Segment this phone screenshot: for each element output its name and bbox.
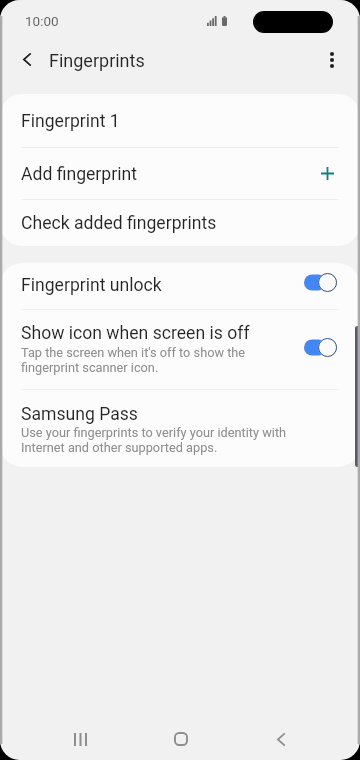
button[interactable]: Navigate up	[3, 40, 43, 80]
button[interactable]: Recent apps	[48, 716, 112, 760]
button[interactable]: Show icon when screen is off	[0, 309, 360, 389]
button[interactable]: Back	[249, 716, 313, 760]
button[interactable]: Samsung Pass	[0, 389, 360, 467]
button[interactable]: Add fingerprint	[0, 147, 360, 199]
button[interactable]: Fingerprint 1	[0, 94, 360, 147]
button[interactable]: Toggle	[304, 338, 337, 357]
button[interactable]: Fingerprint unlock	[0, 263, 360, 309]
staticText: Check added fingerprints	[21, 213, 217, 234]
staticText: Tap the screen when it's off to show the…	[21, 345, 246, 375]
button[interactable]: Check added fingerprints	[0, 199, 360, 246]
button[interactable]: Home	[149, 716, 213, 760]
staticText: Show icon when screen is off	[21, 323, 250, 344]
staticText: Samsung Pass	[21, 404, 138, 425]
staticText: Add fingerprint	[21, 164, 137, 185]
staticText: Use your fingerprints to verify your ide…	[21, 425, 287, 455]
staticText: Fingerprints	[49, 50, 145, 71]
staticText: Fingerprint unlock	[21, 275, 162, 296]
button[interactable]: More options	[312, 39, 352, 79]
button[interactable]: Toggle	[304, 273, 337, 292]
staticText: Fingerprint 1	[21, 111, 120, 132]
staticText: 10:00	[25, 13, 59, 29]
